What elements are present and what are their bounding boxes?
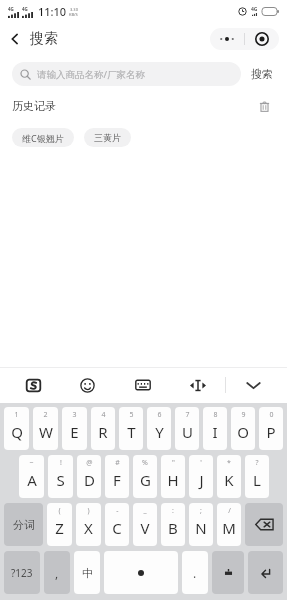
staticText: ?123 [11,566,33,580]
staticText: M [222,518,236,538]
button[interactable]: 中 [74,551,100,594]
button[interactable] [212,551,244,594]
button[interactable]: " [161,455,185,498]
staticText: * [227,458,231,468]
staticText: P [266,422,276,442]
staticText: 维C银翘片 [22,132,64,144]
button[interactable]: 分词 [4,503,43,546]
staticText: H [167,470,179,490]
button[interactable]: : [161,503,185,546]
staticText: 7 [185,410,190,420]
staticText: S [56,470,65,490]
button[interactable]: Target [245,28,279,50]
staticText: " [172,458,175,468]
button[interactable]: Keyboard layout [115,367,170,403]
staticText: B [168,518,178,538]
staticText: K [224,470,234,490]
staticText: W [39,422,53,442]
staticText: 请输入商品名称/厂家名称 [37,68,146,81]
button[interactable]: 3 [62,407,87,450]
button[interactable]: 6 [147,407,171,450]
button[interactable] [104,551,178,594]
button[interactable]: ( [47,503,72,546]
staticText: X [84,518,93,538]
button[interactable]: % [133,455,157,498]
button[interactable]: . [182,551,208,594]
button[interactable]: 三黄片 [84,128,131,147]
staticText: J [199,470,204,490]
staticText: _ [143,506,147,516]
button[interactable]: 0 [259,407,283,450]
staticText: ! [60,458,62,468]
staticText: N [195,518,207,538]
button[interactable]: 请输入商品名称/厂家名称 [12,62,241,86]
button[interactable]: 搜索 [249,63,275,85]
button[interactable]: ! [48,455,73,498]
button[interactable]: - [105,503,129,546]
staticText: Q [11,422,23,442]
button[interactable]: 4 [91,407,115,450]
button[interactable]: @ [77,455,101,498]
staticText: KB/S [69,12,78,17]
staticText: 9 [241,410,246,420]
staticText: 6 [157,410,162,420]
button[interactable]: _ [133,503,157,546]
button[interactable]: Backspace [245,503,283,546]
button[interactable]: 5 [119,407,143,450]
staticText: 三黄片 [94,132,121,143]
staticText: L [253,470,261,490]
button[interactable]: ~ [19,455,44,498]
staticText: @ [86,458,93,468]
staticText: ; [200,506,202,516]
button[interactable]: 维C银翘片 [12,128,74,147]
staticText: ? [255,458,259,468]
staticText: E [70,422,79,442]
staticText: 0 [269,410,274,420]
button[interactable]: Hide keyboard [226,367,281,403]
staticText: R [98,422,108,442]
staticText: / [228,506,231,516]
staticText: 3 [72,410,77,420]
staticText: V [140,518,150,538]
staticText: 4 [101,410,106,420]
button[interactable]: Emoji [60,367,115,403]
staticText: 4G [251,6,258,13]
staticText: C [112,518,122,538]
button[interactable]: Sogou input [6,367,60,403]
button[interactable]: Back [0,24,30,54]
staticText: 分词 [13,518,35,532]
button[interactable]: , [44,551,70,594]
staticText: O [237,422,249,442]
button[interactable] [248,551,283,594]
staticText: 8 [213,410,218,420]
staticText: - [116,506,119,516]
staticText: Z [55,518,64,538]
button[interactable]: 9 [231,407,255,450]
button[interactable]: 8 [203,407,227,450]
staticText: # [115,458,120,468]
button[interactable]: * [217,455,241,498]
staticText: U [182,422,193,442]
button[interactable]: 1 [4,407,29,450]
staticText: D [84,470,95,490]
button[interactable]: 7 [175,407,199,450]
staticText: T [127,422,136,442]
button[interactable]: More options [210,28,244,50]
button[interactable]: Clear history [253,95,275,117]
button[interactable]: Move cursor [170,367,225,403]
staticText: % [142,458,148,468]
button[interactable]: # [105,455,129,498]
button[interactable]: ; [189,503,213,546]
staticText: 1 [14,410,19,420]
staticText: : [172,506,174,516]
button[interactable]: ? [245,455,269,498]
staticText: I [212,422,218,442]
button[interactable]: ?123 [4,551,40,594]
staticText: , [55,565,59,581]
staticText: G [140,470,151,490]
staticText: F [113,470,121,490]
button[interactable]: ) [76,503,101,546]
button[interactable]: 2 [33,407,58,450]
button[interactable]: / [217,503,241,546]
button[interactable]: ' [189,455,213,498]
